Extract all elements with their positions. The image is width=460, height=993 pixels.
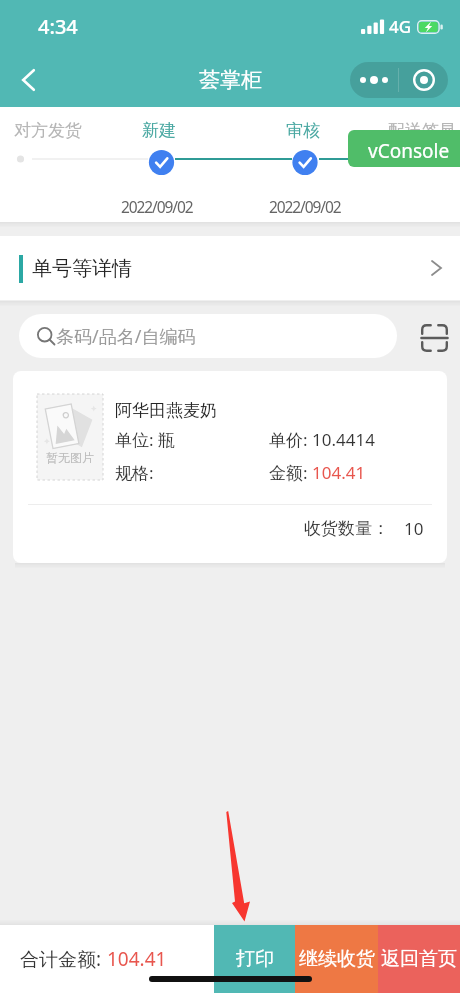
button[interactable]: 打印 [214, 925, 295, 993]
staticText: 104.41 [107, 946, 167, 972]
staticText: 4:34 [38, 13, 78, 40]
staticText: 收货数量： [304, 518, 389, 539]
button[interactable]: Back [0, 52, 54, 107]
staticText: vConsole [368, 138, 450, 164]
staticText: 配送签显 [388, 120, 456, 141]
staticText: 2022/09/02 [269, 196, 341, 217]
button[interactable]: 继续收货 [295, 925, 378, 993]
staticText: 返回首页 [381, 947, 457, 971]
staticText: 打印 [236, 947, 274, 971]
button[interactable]: 单号等详情 [0, 236, 460, 300]
button[interactable]: More [350, 62, 398, 98]
button[interactable]: 返回首页 [378, 925, 460, 993]
button[interactable]: 暂无图片 [13, 371, 447, 563]
staticText: 合计金额: [20, 946, 107, 972]
staticText: 104.41 [312, 461, 366, 484]
staticText: 金额: [269, 461, 312, 484]
staticText: 对方发货 [14, 120, 82, 141]
staticText: 单号等详情 [32, 256, 132, 281]
button[interactable]: Close [399, 62, 448, 98]
staticText: 10 [404, 517, 424, 540]
staticText: 继续收货 [299, 947, 375, 971]
staticText: 条码/品名/自编码 [56, 324, 196, 349]
staticText: 荟掌柜 [199, 67, 262, 93]
staticText: 单位: 瓶 [115, 428, 175, 451]
staticText: 暂无图片 [46, 450, 94, 465]
staticText: 规格: [115, 461, 154, 484]
button[interactable]: vConsole [348, 130, 460, 167]
button[interactable]: Scan [421, 321, 448, 355]
staticText: 新建 [142, 120, 176, 141]
staticText: 单价: 10.4414 [269, 428, 375, 451]
button[interactable]: 条码/品名/自编码 [37, 314, 397, 358]
staticText: 2022/09/02 [121, 196, 193, 217]
staticText: 审核 [286, 120, 320, 141]
staticText: 4G [389, 15, 412, 38]
staticText: 阿华田燕麦奶 [115, 400, 217, 421]
